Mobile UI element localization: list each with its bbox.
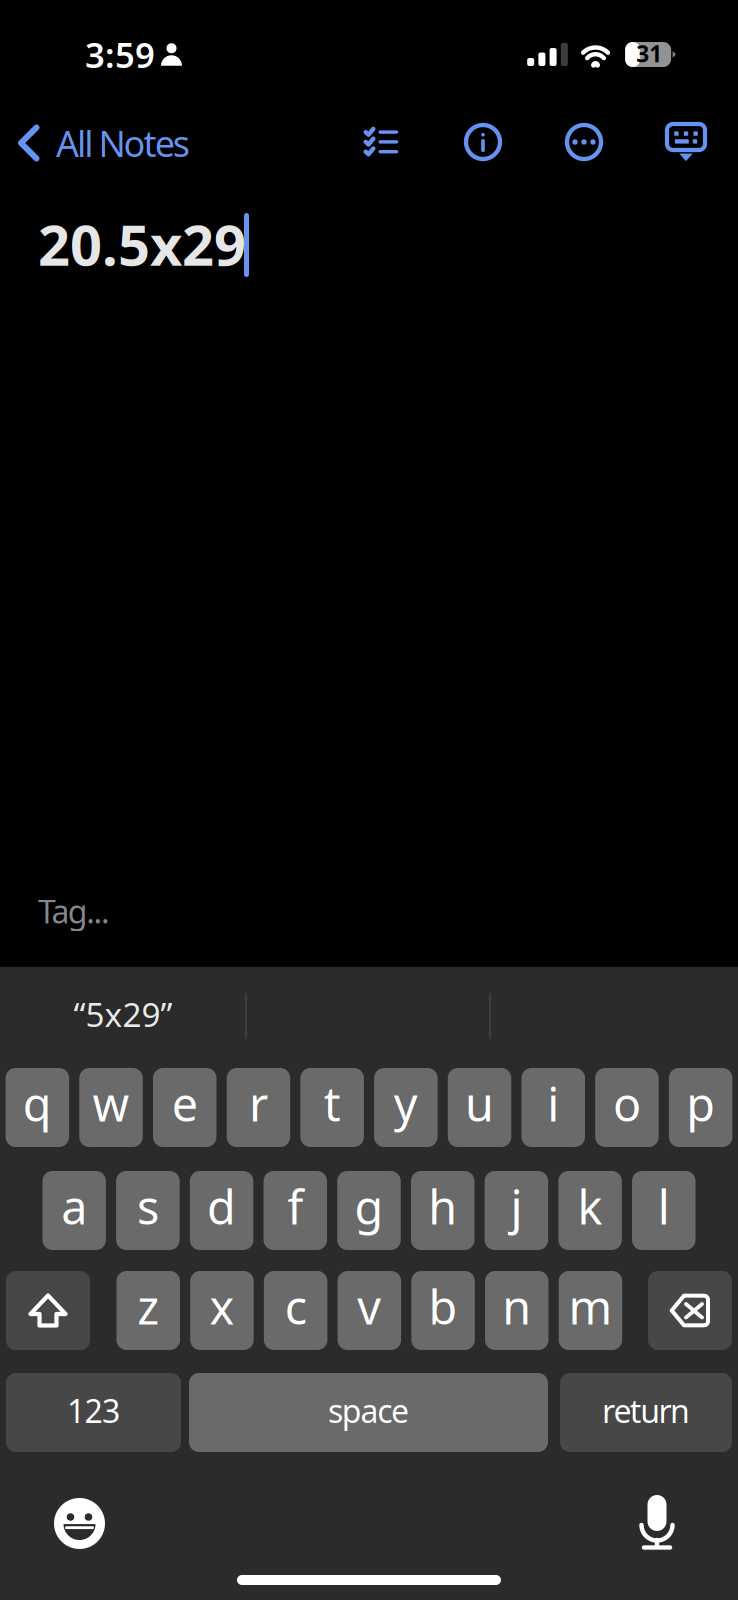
staticText: h [428, 1175, 457, 1237]
button[interactable]: m [559, 1271, 622, 1350]
button[interactable]: p [669, 1068, 732, 1147]
staticText: f [287, 1175, 303, 1237]
button[interactable]: All Notes [8, 112, 238, 174]
button[interactable]: o [595, 1068, 659, 1147]
button[interactable]: e [153, 1068, 216, 1147]
staticText: p [686, 1072, 715, 1134]
button[interactable]: i [521, 1068, 585, 1147]
staticText: z [137, 1275, 159, 1337]
button[interactable]: g [337, 1171, 401, 1250]
button[interactable]: Shift [6, 1271, 90, 1350]
staticText: w [93, 1072, 130, 1134]
button[interactable]: a [42, 1171, 106, 1250]
button[interactable]: j [485, 1171, 548, 1250]
staticText: space [328, 1389, 409, 1432]
staticText: o [613, 1072, 641, 1134]
button[interactable]: space [189, 1373, 548, 1452]
button[interactable]: Emoji [54, 1498, 105, 1549]
button[interactable]: 123 [6, 1373, 181, 1452]
staticText: c [285, 1275, 307, 1337]
staticText: u [465, 1072, 494, 1134]
button[interactable]: return [560, 1373, 732, 1452]
staticText: e [172, 1072, 198, 1134]
staticText: i [547, 1072, 559, 1134]
button[interactable]: Delete [648, 1271, 732, 1350]
button[interactable]: q [6, 1068, 69, 1147]
staticText: 3:59 [85, 31, 155, 77]
staticText: l [658, 1175, 670, 1237]
button[interactable]: z [116, 1271, 180, 1350]
staticText: All Notes [56, 119, 190, 167]
staticText: y [394, 1072, 418, 1134]
staticText: a [61, 1175, 87, 1237]
button[interactable]: Info [454, 112, 512, 172]
button[interactable]: c [264, 1271, 327, 1350]
button[interactable]: r [227, 1068, 290, 1147]
button[interactable]: Checklist [352, 112, 410, 172]
button[interactable]: “5x29” [0, 978, 246, 1054]
staticText: r [249, 1072, 268, 1134]
button[interactable]: f [264, 1171, 327, 1250]
staticText: m [568, 1275, 612, 1337]
staticText: 123 [67, 1389, 120, 1432]
button[interactable]: v [338, 1271, 401, 1350]
button[interactable]: s [116, 1171, 180, 1250]
button[interactable]: t [300, 1068, 364, 1147]
staticText: 31 [636, 38, 662, 68]
staticText: q [23, 1072, 52, 1134]
staticText: “5x29” [73, 992, 172, 1036]
staticText: b [429, 1275, 458, 1337]
button[interactable]: y [374, 1068, 438, 1147]
staticText: j [510, 1175, 522, 1237]
button[interactable]: Dictation [639, 1494, 675, 1550]
button[interactable]: u [448, 1068, 511, 1147]
staticText: k [578, 1175, 603, 1237]
staticText: t [324, 1072, 341, 1134]
button[interactable]: w [79, 1068, 143, 1147]
staticText: return [602, 1389, 690, 1432]
staticText: v [357, 1275, 381, 1337]
button[interactable]: h [411, 1171, 474, 1250]
button[interactable]: More [555, 112, 613, 172]
staticText: x [209, 1275, 234, 1337]
button[interactable]: n [485, 1271, 548, 1350]
staticText: n [502, 1275, 531, 1337]
button[interactable]: k [558, 1171, 622, 1250]
button[interactable]: Hide Keyboard [657, 113, 715, 173]
staticText: Tag... [38, 890, 110, 932]
button[interactable]: b [411, 1271, 475, 1350]
staticText: s [137, 1175, 159, 1237]
staticText: 20.5x29 [38, 207, 246, 281]
button[interactable]: x [190, 1271, 254, 1350]
staticText: g [354, 1175, 383, 1237]
button[interactable]: d [190, 1171, 253, 1250]
staticText: d [207, 1175, 236, 1237]
button[interactable]: l [632, 1171, 695, 1250]
